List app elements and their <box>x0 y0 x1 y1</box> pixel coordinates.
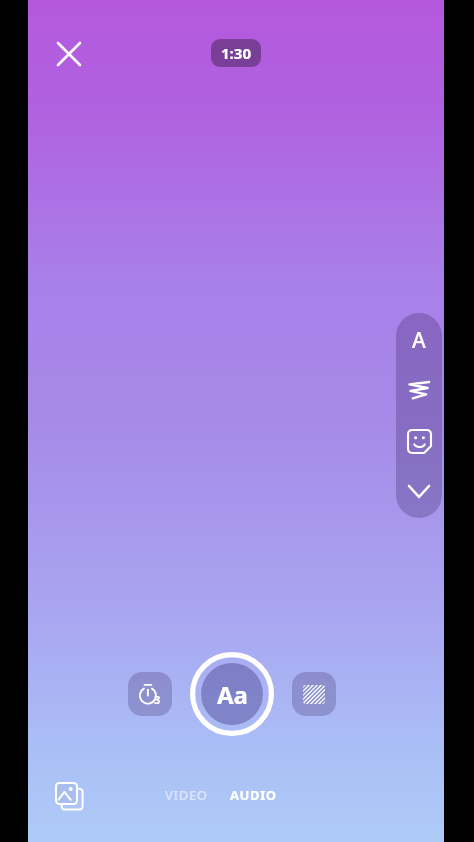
button[interactable]: Text <box>396 317 442 363</box>
button[interactable]: Close <box>48 33 90 75</box>
button[interactable]: Draw <box>396 367 442 413</box>
staticText: Aa <box>217 678 248 711</box>
button[interactable]: Effects <box>292 672 336 716</box>
staticText: AUDIO <box>230 786 277 804</box>
staticText: A <box>412 326 426 355</box>
button[interactable]: Collapse tools <box>396 468 442 514</box>
button[interactable]: Text style <box>190 652 274 736</box>
button[interactable]: VIDEO <box>158 781 215 809</box>
button[interactable]: 1:30 <box>211 39 261 67</box>
button[interactable]: AUDIO <box>223 781 284 809</box>
staticText: 3 <box>154 692 161 707</box>
staticText: VIDEO <box>165 786 208 804</box>
staticText: 1:30 <box>221 43 251 63</box>
button[interactable]: Sticker <box>396 418 442 464</box>
button[interactable]: Timer <box>128 672 172 716</box>
button[interactable]: Gallery <box>50 777 88 815</box>
